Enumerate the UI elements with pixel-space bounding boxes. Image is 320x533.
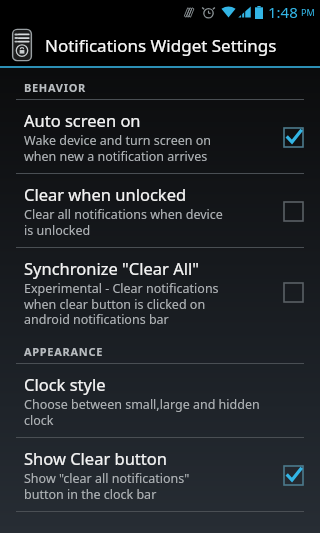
- staticText: BEHAVIOR: [24, 80, 87, 95]
- button[interactable]: Clock style: [0, 364, 320, 437]
- staticText: Clock style: [24, 373, 106, 395]
- staticText: Synchronize "Clear All": [24, 257, 199, 279]
- button[interactable]: Show Clear button: [0, 438, 320, 511]
- button[interactable]: Auto screen on: [0, 100, 320, 173]
- staticText: Auto screen on: [24, 109, 141, 131]
- other: App icon: [9, 28, 35, 62]
- button[interactable]: Unchecked: [282, 200, 304, 222]
- staticText: Notifications Widget Settings: [45, 34, 277, 57]
- staticText: Clear all notifications when device is u…: [24, 206, 223, 238]
- button[interactable]: Checked: [282, 464, 304, 486]
- button[interactable]: Checked: [282, 126, 304, 148]
- staticText: Experimental - Clear notifications when …: [24, 280, 219, 327]
- staticText: Show Clear button: [24, 447, 167, 469]
- staticText: Clear when unlocked: [24, 183, 187, 205]
- button[interactable]: Synchronize "Clear All": [0, 248, 320, 336]
- staticText: Wake device and turn screen on when new …: [24, 132, 212, 164]
- staticText: PM: [301, 6, 315, 18]
- staticText: Show "clear all notifications" button in…: [24, 470, 190, 502]
- staticText: 1:48: [268, 2, 298, 22]
- staticText: APPEARANCE: [24, 344, 104, 359]
- button[interactable]: Unchecked: [282, 281, 304, 303]
- staticText: Choose between small,large and hidden cl…: [24, 396, 260, 428]
- button[interactable]: Clear when unlocked: [0, 174, 320, 247]
